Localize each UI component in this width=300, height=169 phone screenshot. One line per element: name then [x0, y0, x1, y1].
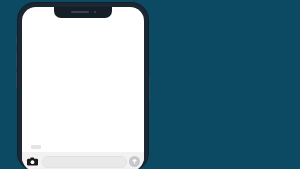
button[interactable]: Send [129, 156, 140, 167]
button[interactable]: Camera [26, 155, 39, 168]
